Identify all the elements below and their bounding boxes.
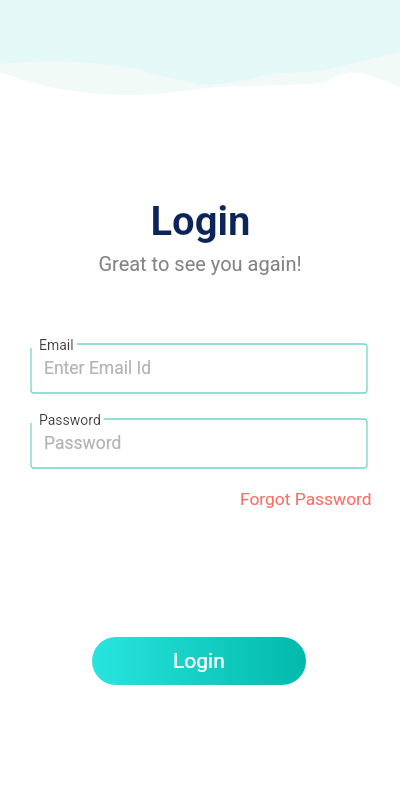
staticText: Login xyxy=(150,198,251,245)
staticText: Login xyxy=(173,649,225,674)
button[interactable]: Forgot Password xyxy=(237,486,375,512)
staticText: Enter Email Id xyxy=(44,358,152,379)
staticText: Forgot Password xyxy=(240,489,372,509)
staticText: Great to see you again! xyxy=(98,252,302,275)
button[interactable]: Password xyxy=(31,419,367,468)
staticText: Email xyxy=(39,337,74,353)
button[interactable]: Login xyxy=(92,637,306,685)
staticText: Password xyxy=(39,412,101,428)
button[interactable]: Enter Email Id xyxy=(31,344,367,393)
staticText: Password xyxy=(44,433,122,454)
